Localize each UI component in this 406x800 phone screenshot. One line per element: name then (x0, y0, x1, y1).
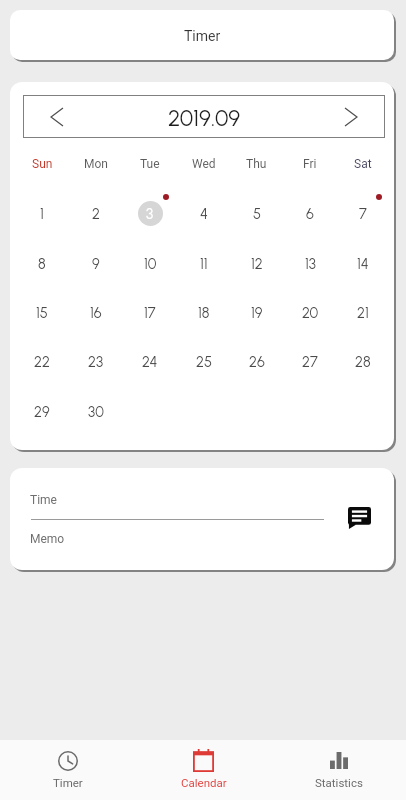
staticText: 24 (142, 353, 158, 370)
button[interactable]: 21 (344, 293, 382, 331)
staticText: Timer (184, 28, 221, 44)
staticText: 21 (357, 304, 369, 321)
button[interactable]: Next month (331, 95, 371, 138)
button[interactable]: 24 (131, 342, 169, 380)
staticText: Statistics (315, 776, 363, 789)
staticText: 16 (90, 304, 102, 321)
button[interactable]: 3 (131, 194, 169, 232)
staticText: 4 (200, 205, 208, 222)
staticText: Thu (246, 157, 267, 171)
staticText: 28 (355, 353, 371, 370)
staticText: 15 (36, 304, 48, 321)
staticText: 11 (200, 255, 208, 272)
button[interactable]: 22 (23, 342, 61, 380)
staticText: 2019.09 (168, 105, 241, 132)
staticText: 9 (92, 255, 100, 272)
button[interactable]: 14 (344, 244, 382, 282)
button[interactable]: 17 (131, 293, 169, 331)
staticText: Sat (354, 157, 372, 171)
staticText: 23 (88, 353, 104, 370)
button[interactable]: 11 (185, 244, 223, 282)
staticText: Mon (84, 157, 108, 171)
button[interactable]: 10 (131, 244, 169, 282)
button[interactable]: Timer (10, 10, 394, 60)
staticText: Fri (303, 157, 317, 171)
button[interactable]: Calendar (136, 740, 271, 800)
button[interactable]: 5 (238, 194, 276, 232)
button[interactable]: 7 (344, 194, 382, 232)
staticText: 25 (196, 353, 212, 370)
button[interactable]: 20 (291, 293, 329, 331)
staticText: Calendar (181, 776, 227, 789)
button[interactable]: Timer (0, 740, 136, 800)
staticText: Sun (32, 157, 53, 171)
staticText: Memo (30, 532, 65, 546)
button[interactable]: 9 (77, 244, 115, 282)
staticText: 29 (34, 403, 50, 420)
staticText: 1 (40, 205, 44, 222)
staticText: 8 (38, 255, 46, 272)
button[interactable]: 30 (77, 392, 115, 430)
staticText: Timer (53, 776, 83, 789)
staticText: 5 (253, 205, 262, 222)
button[interactable]: Previous month (37, 95, 77, 138)
staticText: 18 (198, 304, 210, 321)
button[interactable]: 19 (238, 293, 276, 331)
staticText: 6 (306, 205, 314, 222)
staticText: 7 (359, 205, 367, 222)
staticText: 3 (146, 205, 154, 222)
staticText: 27 (302, 353, 318, 370)
staticText: 26 (249, 353, 265, 370)
staticText: 22 (34, 353, 50, 370)
staticText: 10 (144, 255, 157, 272)
staticText: 20 (302, 304, 319, 321)
button[interactable]: 27 (291, 342, 329, 380)
staticText: 14 (357, 255, 369, 272)
button[interactable]: 16 (77, 293, 115, 331)
button[interactable]: 18 (185, 293, 223, 331)
button[interactable]: 2 (77, 194, 115, 232)
button[interactable]: 12 (238, 244, 276, 282)
button[interactable]: 25 (185, 342, 223, 380)
staticText: 12 (251, 255, 263, 272)
button[interactable]: 28 (344, 342, 382, 380)
button[interactable]: 15 (23, 293, 61, 331)
button[interactable]: 6 (291, 194, 329, 232)
button[interactable]: 29 (23, 392, 61, 430)
staticText: Time (30, 493, 57, 507)
staticText: 17 (144, 304, 156, 321)
button[interactable]: 8 (23, 244, 61, 282)
staticText: 30 (88, 403, 104, 420)
button[interactable]: Add memo (343, 502, 375, 534)
staticText: 13 (305, 255, 316, 272)
button[interactable]: 23 (77, 342, 115, 380)
button[interactable]: 26 (238, 342, 276, 380)
button[interactable]: Statistics (271, 740, 406, 800)
button[interactable]: 4 (185, 194, 223, 232)
staticText: 19 (251, 304, 263, 321)
staticText: Tue (140, 157, 160, 171)
button[interactable]: 13 (291, 244, 329, 282)
button[interactable]: 1 (23, 194, 61, 232)
staticText: Wed (192, 157, 216, 171)
staticText: 2 (92, 205, 100, 222)
